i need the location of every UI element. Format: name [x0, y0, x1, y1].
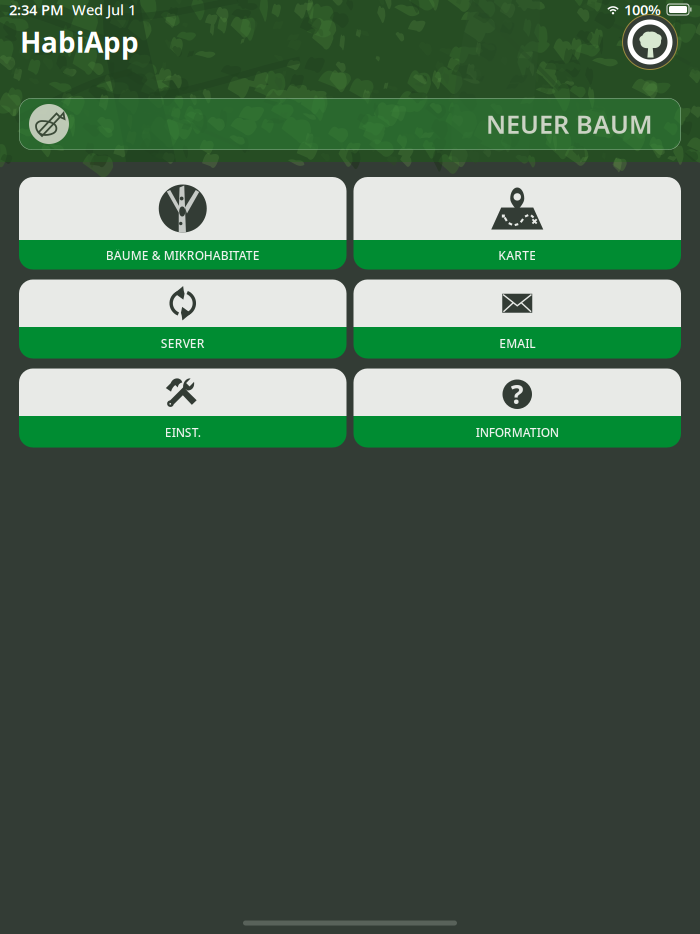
staticText: HabiApp [20, 23, 139, 61]
button[interactable]: HabiApp profile [622, 14, 678, 70]
button[interactable]: SERVER [19, 279, 346, 358]
button[interactable]: BÄUME & MIKROHABITATE [19, 177, 346, 269]
staticText: 100% [624, 0, 661, 19]
staticText: 2:34 PM [9, 0, 64, 19]
button[interactable]: EINST. [19, 368, 346, 447]
staticText: ? [511, 376, 524, 411]
staticText: SERVER [161, 335, 205, 351]
staticText: BÄUME & MIKROHABITATE [106, 247, 260, 263]
staticText: INFORMATION [476, 424, 559, 440]
button[interactable]: EMAIL [353, 279, 681, 358]
button[interactable]: KARTE [353, 177, 681, 269]
staticText: NEUER BAUM [486, 107, 653, 141]
staticText: Wed Jul 1 [64, 0, 136, 19]
staticText: KARTE [498, 247, 536, 263]
staticText: EMAIL [499, 335, 535, 351]
button[interactable]: NEUER BAUM [19, 98, 681, 150]
staticText: EINST. [165, 424, 201, 440]
button[interactable]: ? [353, 368, 681, 447]
